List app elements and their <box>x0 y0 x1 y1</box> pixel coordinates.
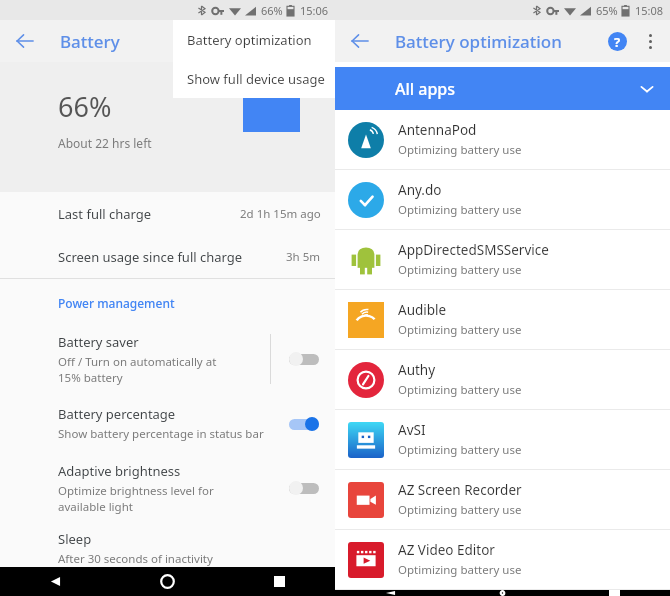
staticText: 66% <box>58 88 112 125</box>
staticText: Optimizing battery use <box>398 142 522 158</box>
button[interactable]: AvSI <box>335 410 670 469</box>
staticText: Power management <box>58 295 175 311</box>
staticText: Battery <box>60 30 120 53</box>
button[interactable]: AppDirectedSMSService <box>335 230 670 289</box>
button[interactable]: Recents <box>558 590 670 596</box>
button[interactable]: Help <box>600 24 634 58</box>
staticText: Battery optimization <box>395 30 562 53</box>
staticText: 65% <box>596 3 618 18</box>
staticText: Audible <box>398 301 447 319</box>
staticText: Show full device usage <box>187 70 325 88</box>
button[interactable]: All apps <box>335 67 670 110</box>
staticText: Optimizing battery use <box>398 322 522 338</box>
button[interactable]: Back <box>4 20 46 62</box>
button[interactable]: Battery percentage <box>0 397 335 454</box>
staticText: Authy <box>398 361 436 379</box>
button[interactable]: Off <box>289 352 319 366</box>
button[interactable]: Authy <box>335 350 670 409</box>
button[interactable]: AZ Screen Recorder <box>335 470 670 529</box>
staticText: All apps <box>395 78 456 100</box>
staticText: AvSI <box>398 421 426 439</box>
button[interactable]: Audible <box>335 290 670 349</box>
staticText: 15:06 <box>300 3 329 18</box>
button[interactable]: Battery saver <box>0 325 335 397</box>
staticText: ? <box>614 33 621 51</box>
staticText: Optimizing battery use <box>398 262 522 278</box>
staticText: About 22 hrs left <box>58 135 152 151</box>
staticText: AZ Screen Recorder <box>398 481 522 499</box>
button[interactable]: Screen usage since full charge <box>0 235 335 278</box>
button[interactable]: On <box>289 417 319 431</box>
staticText: Optimize brightness level for available … <box>58 483 214 514</box>
button[interactable]: Back <box>335 590 446 596</box>
button[interactable]: AntennaPod <box>335 110 670 169</box>
staticText: Optimizing battery use <box>398 442 522 458</box>
staticText: Optimizing battery use <box>398 202 522 218</box>
staticText: Battery percentage <box>58 405 176 423</box>
staticText: AppDirectedSMSService <box>398 241 549 259</box>
button[interactable]: More options <box>634 25 666 57</box>
button[interactable]: Last full charge <box>0 192 335 235</box>
staticText: Battery optimization <box>187 31 312 49</box>
button[interactable]: Back <box>0 567 111 596</box>
staticText: Battery saver <box>58 333 139 351</box>
staticText: 3h 5m <box>286 249 321 265</box>
staticText: Last full charge <box>58 205 152 223</box>
button[interactable]: Show full device usage <box>173 59 335 98</box>
staticText: Optimizing battery use <box>398 502 522 518</box>
staticText: Show battery percentage in status bar <box>58 426 264 442</box>
staticText: Any.do <box>398 181 442 199</box>
staticText: Optimizing battery use <box>398 382 522 398</box>
button[interactable]: AZ Video Editor <box>335 530 670 589</box>
staticText: Screen usage since full charge <box>58 248 243 266</box>
staticText: AntennaPod <box>398 121 477 139</box>
staticText: 2d 1h 15m ago <box>240 206 321 222</box>
button[interactable]: Back <box>339 20 381 62</box>
button[interactable]: Adaptive brightness <box>0 454 335 526</box>
staticText: 15:08 <box>635 3 664 18</box>
staticText: After 30 seconds of inactivity <box>58 551 213 567</box>
button[interactable]: Home <box>111 567 223 596</box>
staticText: Adaptive brightness <box>58 462 181 480</box>
staticText: Optimizing battery use <box>398 562 522 578</box>
button[interactable]: Any.do <box>335 170 670 229</box>
staticText: 66% <box>261 3 283 18</box>
button[interactable]: Recents <box>223 567 335 596</box>
button[interactable]: Off <box>289 481 319 495</box>
button[interactable]: Home <box>446 590 558 596</box>
staticText: AZ Video Editor <box>398 541 495 559</box>
staticText: Off / Turn on automatically at 15% batte… <box>58 354 217 385</box>
button[interactable]: Battery optimization <box>173 20 335 59</box>
staticText: Sleep <box>58 530 92 548</box>
